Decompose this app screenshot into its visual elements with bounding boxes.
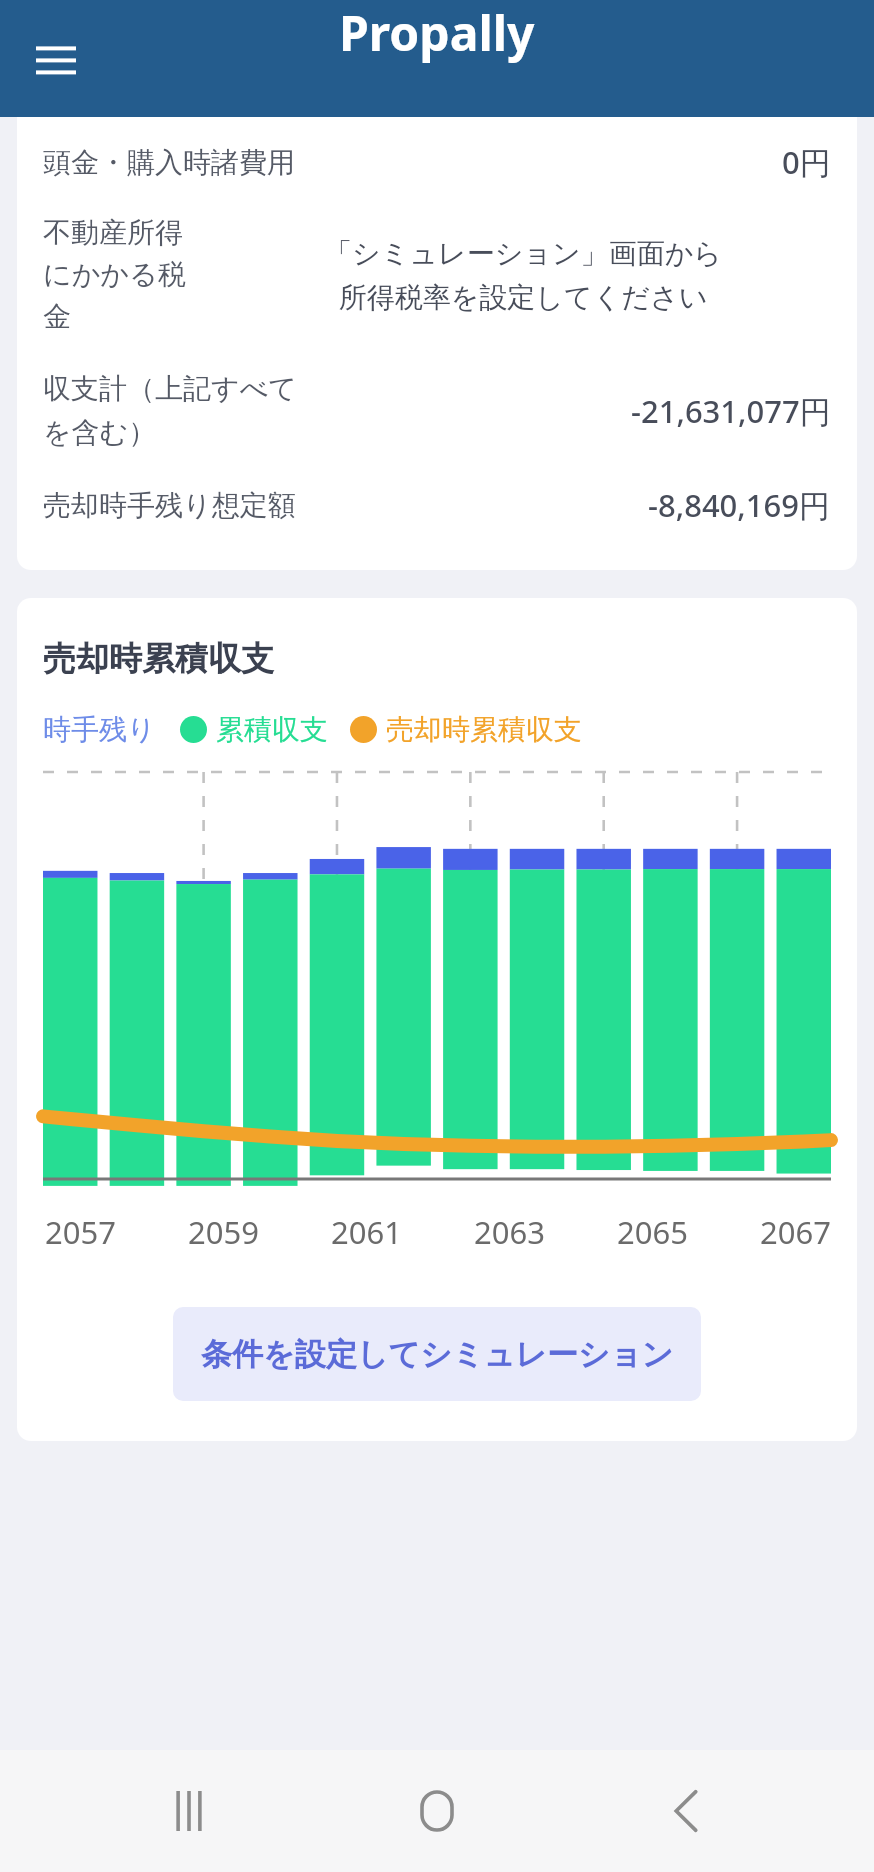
staticText: 収支計（上記すべて を含む）: [43, 371, 373, 450]
staticText: 時手残り: [43, 712, 156, 747]
staticText: 累積収支: [216, 712, 328, 747]
staticText: -8,840,169円: [648, 484, 831, 526]
staticText: Propally: [339, 0, 535, 65]
staticText: 「シミュレーション」画面から 所得税率を設定してください: [324, 236, 722, 315]
button[interactable]: Menu: [20, 23, 92, 95]
staticText: -21,631,077円: [631, 390, 831, 432]
staticText: 条件を設定してシミュレーション: [201, 1335, 674, 1374]
staticText: 売却時手残り想定額: [43, 488, 296, 523]
staticText: 頭金・購入時諸費用: [43, 145, 295, 180]
staticText: 2065: [617, 1211, 688, 1253]
button[interactable]: Home: [377, 1751, 497, 1871]
button[interactable]: Recent apps: [129, 1751, 249, 1871]
staticText: 0円: [782, 141, 831, 183]
button[interactable]: 条件を設定してシミュレーション: [173, 1307, 701, 1401]
staticText: 2067: [760, 1211, 831, 1253]
button[interactable]: Back: [626, 1751, 746, 1871]
staticText: 2063: [474, 1211, 545, 1253]
staticText: 売却時累積収支: [386, 712, 582, 747]
staticText: 2059: [188, 1211, 259, 1253]
staticText: 2057: [45, 1211, 116, 1253]
staticText: 売却時累積収支: [43, 638, 274, 680]
staticText: 不動産所得 にかかる税 金: [43, 215, 215, 335]
staticText: 2061: [331, 1211, 402, 1253]
